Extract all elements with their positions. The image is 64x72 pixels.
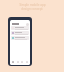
button[interactable]: Profile [26,23,29,26]
button[interactable]: Home [11,60,15,64]
button[interactable]: Search [16,60,20,64]
button[interactable] [11,26,29,30]
button[interactable]: Chats [20,60,24,64]
button[interactable] [11,31,29,35]
staticText: Simple mobile app [19,3,46,7]
button[interactable] [11,36,29,40]
button[interactable]: Settings [25,60,29,64]
staticText: design concept [21,7,43,11]
